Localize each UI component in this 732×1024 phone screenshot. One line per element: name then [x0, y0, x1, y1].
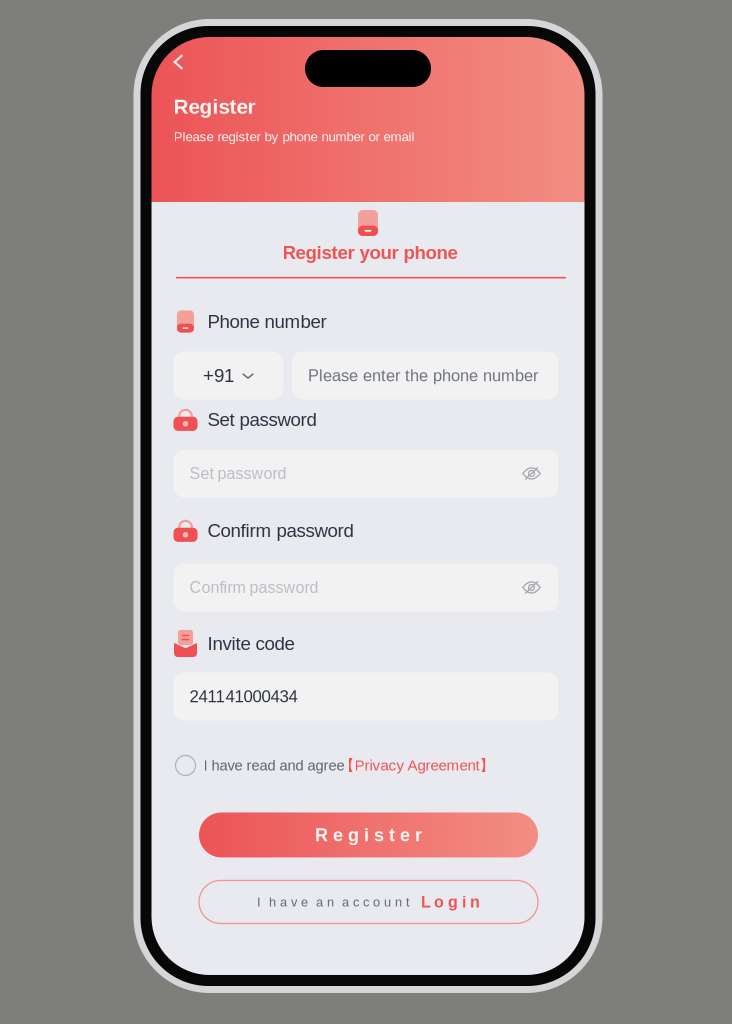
staticText: +91	[203, 365, 234, 386]
staticText: R e g i s t e r	[315, 825, 422, 845]
staticText: Phone number	[207, 311, 326, 332]
staticText: Invite code	[207, 633, 294, 654]
staticText: 241141000434	[189, 687, 297, 706]
button[interactable]: R e g i s t e r	[199, 812, 538, 857]
staticText: Register your phone	[282, 242, 457, 263]
button[interactable]: Accept privacy agreement	[173, 754, 203, 776]
button[interactable]: I h a v e a n a c c o u n t	[199, 880, 538, 923]
button[interactable]: Show Set password	[514, 449, 548, 497]
staticText: Confirm password	[207, 520, 353, 541]
staticText: Please enter the phone number	[308, 366, 538, 385]
button[interactable]: Back	[173, 49, 203, 75]
staticText: 【Privacy Agreement】	[339, 756, 494, 775]
staticText: L o g i n	[421, 893, 480, 911]
button[interactable]: Show Confirm password	[514, 563, 548, 611]
staticText: I h a v e a n a c c o u n t	[257, 895, 410, 909]
button[interactable]: +91	[173, 351, 283, 399]
staticText: I have read and agree	[203, 757, 344, 774]
staticText: Please register by phone number or email	[173, 129, 414, 144]
button[interactable]: 【Privacy Agreement】	[339, 756, 494, 775]
staticText: Set password	[207, 409, 316, 430]
staticText: Register	[173, 95, 255, 118]
staticText: Set password	[189, 464, 286, 482]
staticText: Confirm password	[189, 578, 318, 596]
